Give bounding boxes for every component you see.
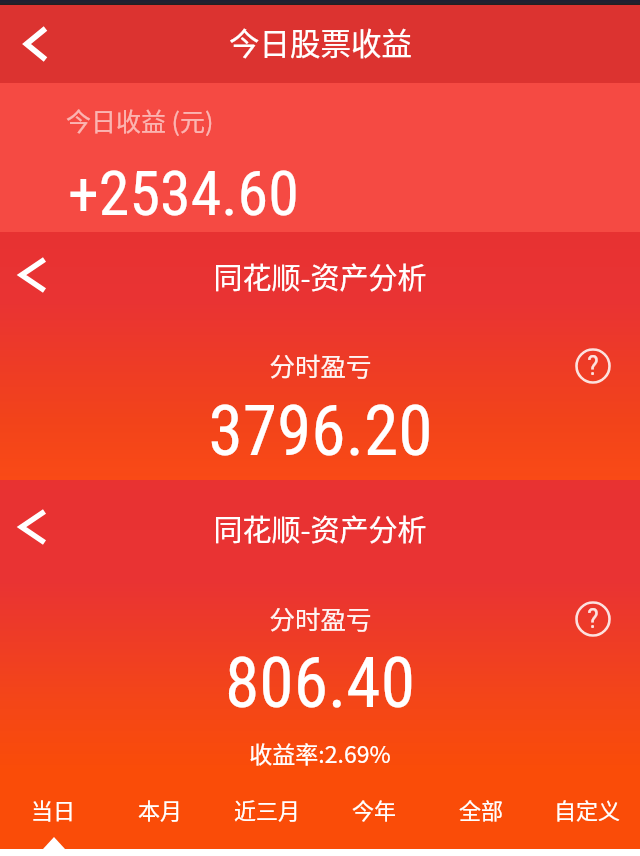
staticText: 自定义 (554, 793, 621, 825)
button[interactable]: 本月 (107, 786, 214, 849)
button[interactable]: 当日 (0, 786, 107, 849)
button[interactable]: Help (571, 344, 615, 388)
staticText: 本月 (138, 793, 183, 825)
staticText: ? (587, 349, 599, 382)
staticText: 今日收益 (元) (66, 102, 214, 138)
staticText: 分时盈亏 (269, 599, 372, 636)
staticText: 今年 (352, 793, 397, 825)
button[interactable]: Help (571, 597, 615, 641)
button[interactable]: Back (9, 503, 57, 551)
staticText: 806.40 (225, 643, 415, 724)
button[interactable]: Back (9, 251, 57, 299)
staticText: 全部 (459, 793, 504, 825)
button[interactable]: 近三月 (214, 786, 321, 849)
staticText: 近三月 (234, 793, 301, 825)
button[interactable]: Back (12, 20, 60, 68)
button[interactable]: 全部 (428, 786, 535, 849)
button[interactable]: 今日收益 (元) (0, 83, 640, 232)
staticText: 同花顺-资产分析 (213, 507, 427, 549)
button[interactable]: 自定义 (535, 786, 640, 849)
staticText: 同花顺-资产分析 (213, 255, 427, 297)
button[interactable]: 今年 (321, 786, 428, 849)
staticText: 分时盈亏 (269, 346, 372, 383)
staticText: ? (587, 602, 599, 635)
staticText: +2534.60 (68, 157, 299, 230)
staticText: 当日 (31, 793, 76, 825)
staticText: 今日股票收益 (229, 20, 412, 64)
staticText: 3796.20 (208, 391, 433, 472)
staticText: 收益率:2.69% (249, 736, 391, 769)
